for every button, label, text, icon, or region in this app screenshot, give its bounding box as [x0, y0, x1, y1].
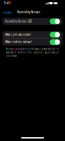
button[interactable]: ‹ Gate [0, 9, 11, 15]
staticText: Water richtin schwel [5, 40, 32, 44]
staticText: ‹ Gate [1, 9, 11, 15]
button[interactable]: Water richtin schwel [2, 39, 62, 46]
staticText: Humidity Sensor [17, 10, 40, 14]
staticText: Water pH calendant [5, 33, 31, 36]
button[interactable]: Water pH calendant [2, 31, 62, 38]
button[interactable]: Humidity Sensor LED [2, 18, 62, 25]
staticText: Sensor provides indicator data which is … [5, 47, 59, 58]
staticText: 9:41 [4, 1, 11, 5]
staticText: Humidity Sensor LED [5, 20, 32, 23]
